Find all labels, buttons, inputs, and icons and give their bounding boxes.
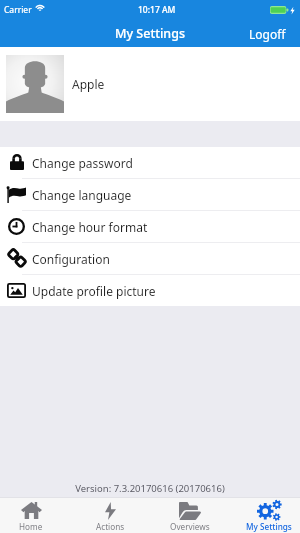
- staticText: Update profile picture: [32, 283, 156, 299]
- button[interactable]: Change hour format: [0, 211, 300, 242]
- staticText: Logoff: [249, 26, 286, 42]
- button[interactable]: Apple: [0, 47, 300, 121]
- button[interactable]: Configuration: [0, 243, 300, 274]
- staticText: Change hour format: [32, 219, 148, 235]
- staticText: My Settings: [115, 25, 185, 42]
- staticText: Change language: [32, 187, 132, 203]
- button[interactable]: My Settings: [231, 498, 300, 533]
- button[interactable]: Logoff: [239, 21, 300, 47]
- staticText: Overviews: [170, 521, 210, 532]
- staticText: Actions: [96, 521, 125, 532]
- staticText: Change password: [32, 155, 133, 171]
- staticText: Apple: [72, 76, 105, 92]
- staticText: Home: [19, 521, 43, 532]
- button[interactable]: Overviews: [152, 498, 228, 533]
- button[interactable]: Change password: [0, 147, 300, 178]
- staticText: Carrier: [4, 4, 32, 16]
- staticText: 10:17 AM: [138, 4, 176, 16]
- button[interactable]: Home: [0, 498, 69, 533]
- button[interactable]: Change language: [0, 179, 300, 210]
- staticText: Version: 7.3.20170616 (20170616): [0, 482, 300, 495]
- staticText: My Settings: [246, 521, 292, 532]
- staticText: Configuration: [32, 251, 110, 267]
- button[interactable]: Update profile picture: [0, 275, 300, 306]
- button[interactable]: Actions: [72, 498, 148, 533]
